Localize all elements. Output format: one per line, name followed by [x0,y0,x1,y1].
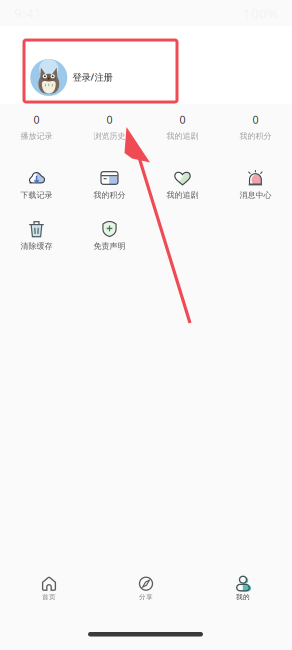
button[interactable]: 0 [0,108,73,146]
button[interactable]: 0 [146,108,219,146]
staticText: 我的积分 [93,190,125,200]
button[interactable]: 清除缓存 [0,219,73,255]
staticText: 首页 [42,593,56,601]
staticText: 免责声明 [93,241,125,251]
staticText: 我的追剧 [166,190,198,200]
staticText: 消息中心 [239,190,271,200]
staticText: 我的追剧 [166,131,198,141]
staticText: 0 [179,112,185,127]
button[interactable]: 我的 [194,574,291,608]
staticText: 0 [252,112,258,127]
staticText: 0 [33,112,39,127]
button[interactable]: 免责声明 [73,219,146,255]
staticText: 清除缓存 [20,241,52,251]
staticText: 登录/注册 [72,71,112,83]
staticText: 我的 [236,593,250,601]
staticText: 0 [106,112,112,127]
button[interactable]: 0 [73,108,146,146]
staticText: 下载记录 [20,190,52,200]
staticText: 我的积分 [239,131,271,141]
button[interactable]: 下载记录 [0,168,73,204]
button[interactable]: 我的积分 [73,168,146,204]
staticText: 浏览历史 [93,131,125,141]
button[interactable]: 0 [219,108,292,146]
button[interactable]: 我的追剧 [146,168,219,204]
staticText: 分享 [139,593,153,601]
staticText: 播放记录 [20,131,52,141]
button[interactable]: 消息中心 [219,168,292,204]
button[interactable]: 首页 [0,574,97,608]
button[interactable]: 登录/注册 [0,39,292,101]
button[interactable]: 分享 [97,574,194,608]
